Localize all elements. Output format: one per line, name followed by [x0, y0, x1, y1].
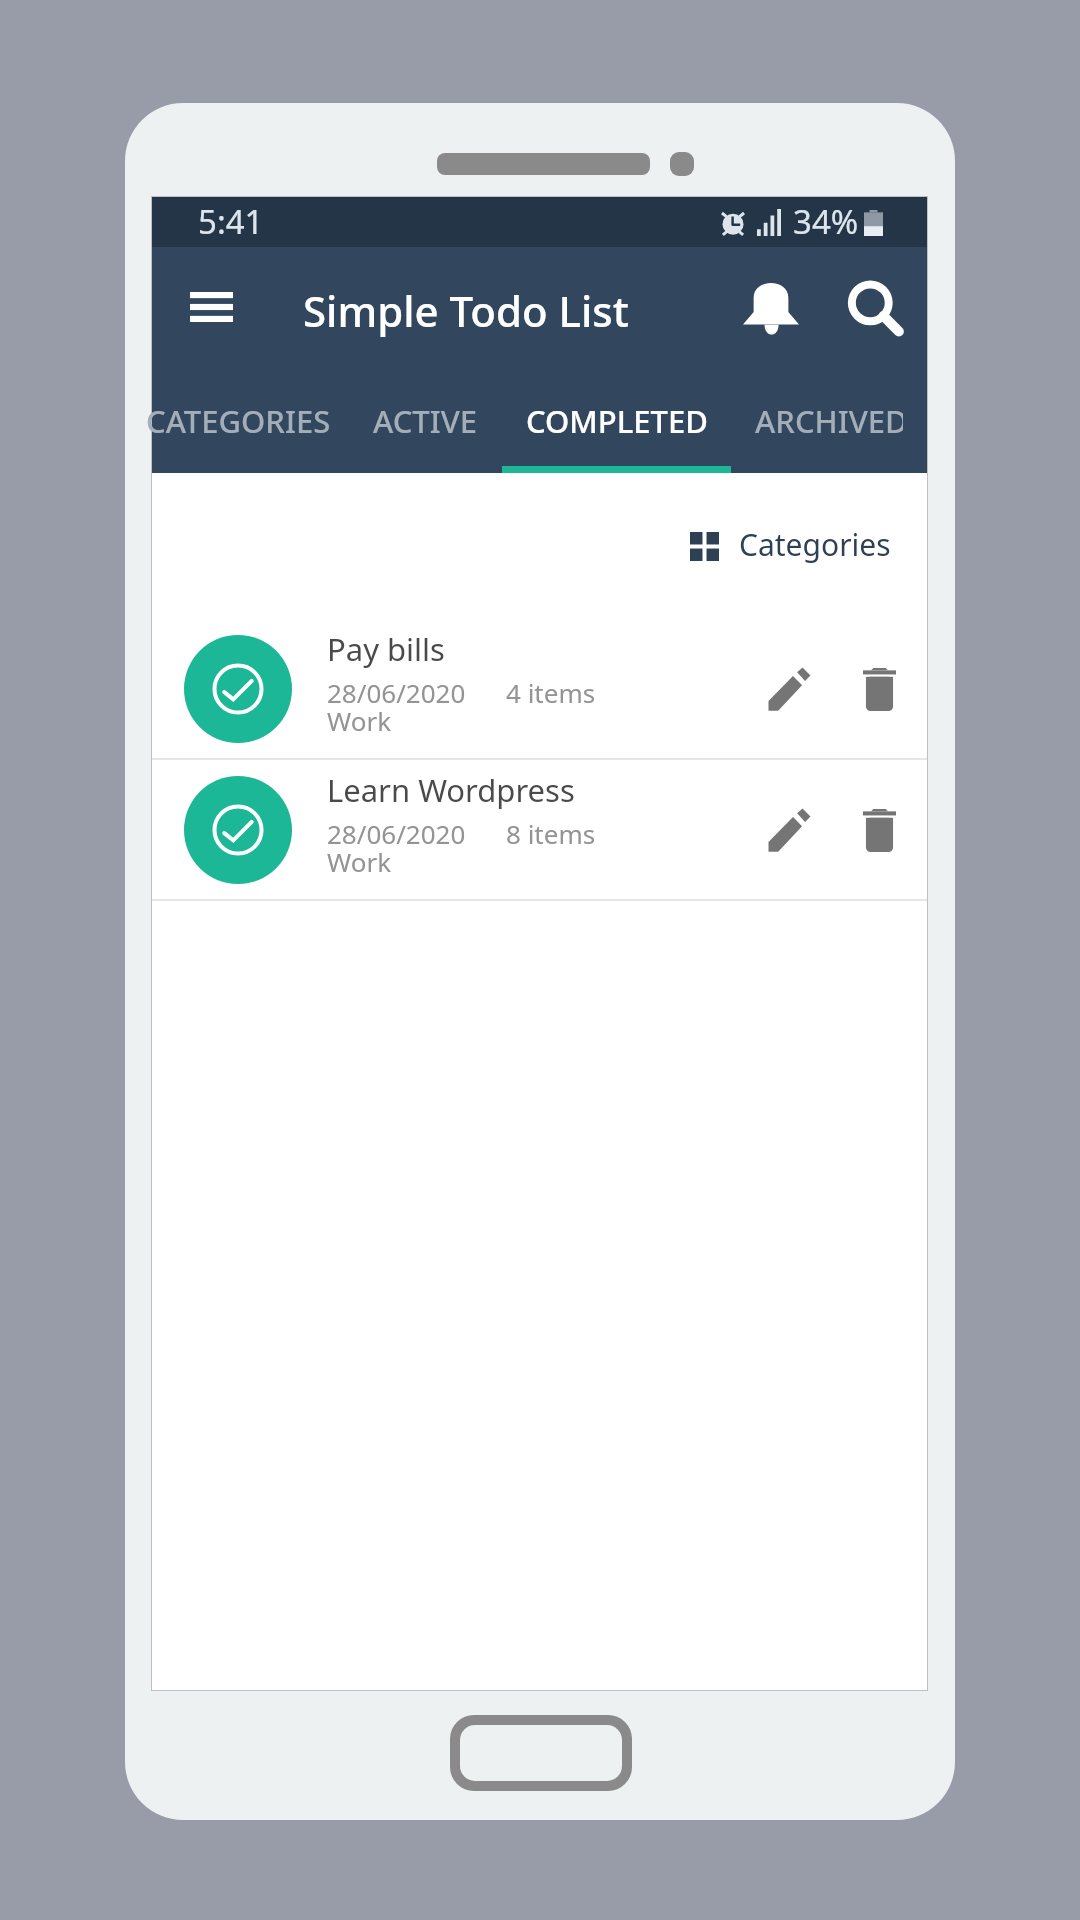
button[interactable]: CATEGORIES: [128, 375, 349, 473]
staticText: COMPLETED: [526, 400, 708, 442]
staticText: 4 items: [506, 675, 596, 710]
button[interactable]: Search: [833, 265, 917, 349]
staticText: 5:41: [198, 199, 264, 244]
button[interactable]: Delete: [842, 650, 916, 728]
staticText: Learn Wordpress: [327, 769, 575, 811]
staticText: 28/06/2020: [327, 816, 466, 851]
staticText: Pay bills: [327, 628, 445, 670]
staticText: Simple Todo List: [303, 282, 629, 339]
button[interactable]: ARCHIVED: [755, 375, 903, 473]
staticText: Work: [327, 844, 392, 879]
button[interactable]: ACTIVE: [349, 375, 502, 473]
button[interactable]: Categories: [678, 514, 903, 579]
staticText: ACTIVE: [373, 400, 478, 442]
staticText: Work: [327, 703, 392, 738]
button[interactable]: Pay bills: [152, 619, 927, 758]
staticText: ARCHIVED: [755, 400, 903, 442]
staticText: Categories: [739, 524, 891, 565]
button[interactable]: Edit: [749, 650, 827, 728]
button[interactable]: Learn Wordpress: [152, 760, 927, 899]
staticText: 34%: [793, 199, 859, 244]
button[interactable]: COMPLETED: [502, 375, 731, 473]
button[interactable]: Edit: [749, 791, 827, 869]
staticText: 8 items: [506, 816, 596, 851]
button[interactable]: Notifications: [729, 265, 813, 349]
staticText: 28/06/2020: [327, 675, 466, 710]
button[interactable]: Delete: [842, 791, 916, 869]
button[interactable]: Menu: [174, 274, 248, 348]
staticText: CATEGORIES: [146, 400, 331, 442]
